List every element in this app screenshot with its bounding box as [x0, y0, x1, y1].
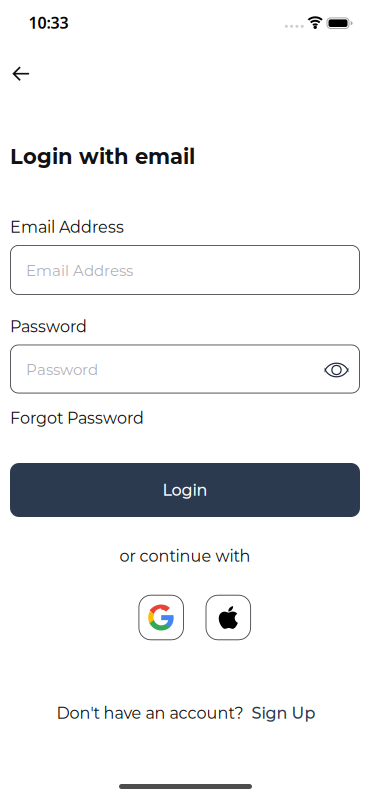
staticText: Password [26, 360, 98, 379]
button[interactable]: Login [10, 463, 360, 517]
staticText: Forgot Password [10, 408, 144, 428]
staticText: or continue with [119, 546, 250, 566]
button[interactable]: Continue with Apple [206, 595, 251, 640]
button[interactable]: Sign Up [251, 703, 315, 723]
staticText: Password [10, 317, 87, 336]
staticText: 10:33 [28, 12, 68, 33]
button[interactable]: Back [5, 58, 37, 90]
staticText: Login [162, 480, 207, 500]
button[interactable]: Forgot Password [10, 408, 144, 428]
staticText: Don't have an account? [56, 703, 243, 723]
staticText: Email Address [26, 261, 133, 280]
button[interactable]: Continue with Google [138, 595, 184, 640]
button[interactable]: Show password [321, 355, 351, 385]
staticText: Email Address [10, 217, 124, 237]
staticText: Sign Up [251, 703, 315, 723]
staticText: Login with email [10, 144, 195, 169]
